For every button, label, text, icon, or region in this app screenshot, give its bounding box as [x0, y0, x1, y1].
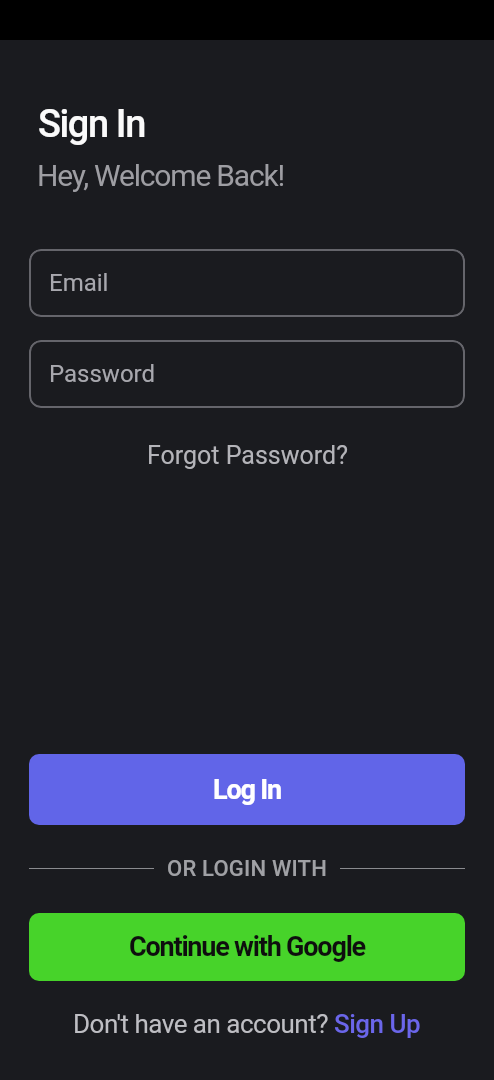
button[interactable]: Email [29, 249, 465, 317]
button[interactable]: Forgot Password? [143, 437, 352, 474]
staticText: Sign In [38, 102, 145, 147]
staticText: Password [49, 360, 156, 388]
staticText: Continue with Google [129, 931, 365, 963]
button[interactable]: Password [29, 340, 465, 408]
button[interactable]: Log In [29, 754, 465, 825]
button[interactable]: Sign Up [334, 1009, 421, 1039]
staticText: Log In [213, 774, 281, 806]
button[interactable]: Continue with Google [29, 913, 465, 981]
staticText: Email [49, 269, 109, 297]
staticText: Hey, Welcome Back! [37, 158, 284, 193]
staticText: Don't have an account? [73, 1009, 334, 1039]
staticText: OR LOGIN WITH [167, 856, 327, 881]
